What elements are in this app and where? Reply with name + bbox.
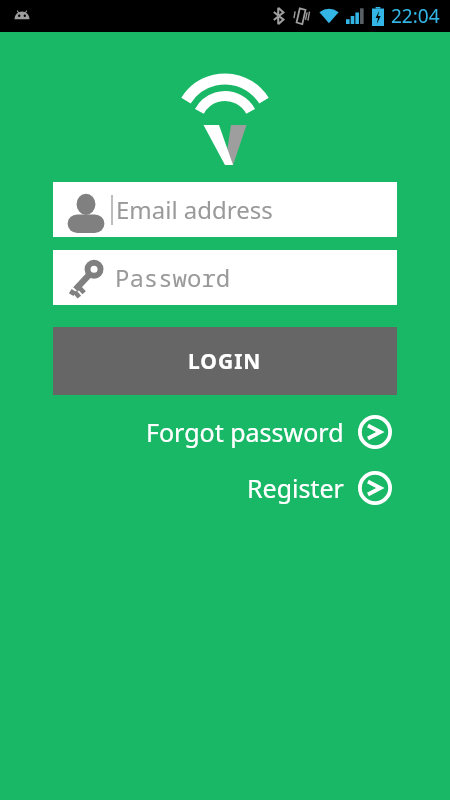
button[interactable]: Forgot password bbox=[142, 408, 397, 456]
staticText: 22:04 bbox=[391, 3, 440, 29]
other: Go bbox=[357, 414, 393, 450]
staticText: Password bbox=[115, 261, 231, 294]
other: Go bbox=[357, 470, 393, 506]
staticText: Forgot password bbox=[146, 415, 344, 449]
staticText: Register bbox=[247, 471, 344, 505]
button[interactable]: Password bbox=[53, 250, 397, 305]
button[interactable]: Email address bbox=[53, 182, 397, 237]
button[interactable]: Register bbox=[243, 464, 397, 512]
staticText: Email address bbox=[116, 193, 273, 226]
staticText: LOGIN bbox=[188, 347, 262, 376]
button[interactable]: LOGIN bbox=[53, 327, 397, 395]
